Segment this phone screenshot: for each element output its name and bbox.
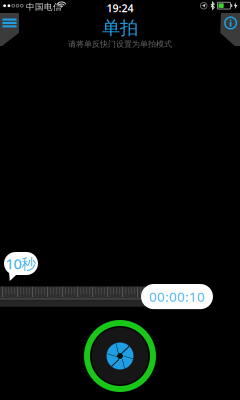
button[interactable]: Info bbox=[214, 13, 240, 46]
staticText: 中国电信 bbox=[26, 2, 62, 12]
staticText: 单拍 bbox=[102, 17, 138, 39]
staticText: 请将单反快门设置为单拍模式 bbox=[68, 39, 172, 49]
staticText: 10秒 bbox=[5, 253, 36, 273]
staticText: 00:00:10 bbox=[149, 287, 205, 306]
staticText: 19:24 bbox=[106, 1, 133, 15]
button[interactable]: Menu bbox=[0, 13, 19, 46]
